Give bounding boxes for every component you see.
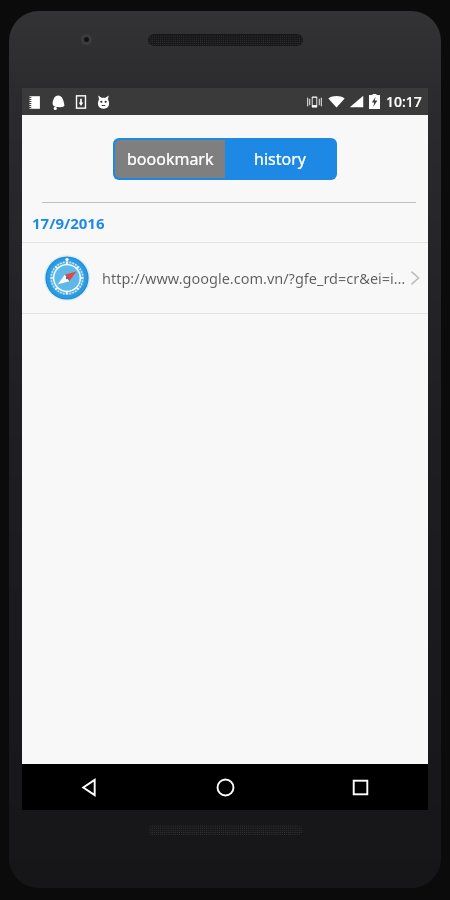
button[interactable]: Home [158, 764, 293, 810]
staticText: boookmark [127, 148, 214, 170]
button[interactable]: Recent apps [293, 764, 428, 810]
other: Open [410, 268, 420, 288]
staticText: history [254, 148, 306, 170]
staticText: 17/9/2016 [32, 213, 105, 233]
staticText: 10:17 [386, 92, 422, 111]
button[interactable]: Back [22, 764, 158, 810]
button[interactable]: boookmark [115, 140, 225, 178]
staticText: http://www.google.com.vn/?gfe_rd=cr&ei=i… [102, 268, 406, 288]
button[interactable]: history [225, 140, 335, 178]
button[interactable]: http://www.google.com.vn/?gfe_rd=cr&ei=i… [22, 243, 428, 313]
